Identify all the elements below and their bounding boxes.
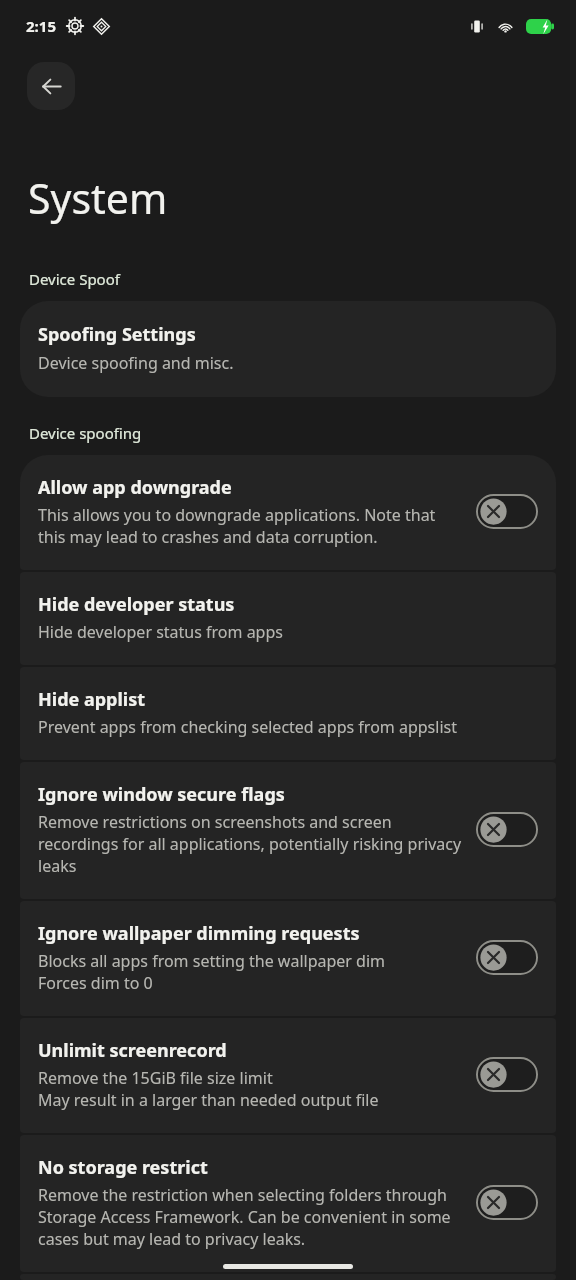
button[interactable]: Spoofing Settings <box>20 301 556 397</box>
staticText: Spoofing Settings <box>38 322 196 347</box>
button[interactable]: Toggle off <box>476 494 538 529</box>
button[interactable]: Toggle off <box>476 812 538 847</box>
staticText: This allows you to downgrade application… <box>38 504 466 548</box>
staticText: Allow app downgrade <box>38 475 232 500</box>
button[interactable]: Toggle off <box>476 1185 538 1220</box>
staticText: Prevent apps from checking selected apps… <box>38 716 457 738</box>
staticText: System <box>28 170 168 226</box>
button[interactable]: No storage restrict <box>20 1135 556 1272</box>
staticText: Unlimit screenrecord <box>38 1038 227 1063</box>
staticText: Device Spoof <box>29 269 120 289</box>
button[interactable]: Ignore window secure flags <box>20 762 556 899</box>
button[interactable]: Toggle off <box>476 940 538 975</box>
button[interactable]: Toggle off <box>476 1057 538 1092</box>
staticText: Remove the restriction when selecting fo… <box>38 1184 466 1250</box>
button[interactable]: Hide developer status <box>20 572 556 665</box>
button[interactable]: Hide applist <box>20 667 556 760</box>
staticText: Ignore window secure flags <box>38 782 285 807</box>
staticText: No storage restrict <box>38 1155 208 1180</box>
button[interactable]: Unlimit screenrecord <box>20 1018 556 1133</box>
staticText: Hide developer status <box>38 592 235 617</box>
staticText: Blocks all apps from setting the wallpap… <box>38 950 386 994</box>
button[interactable]: Ignore wallpaper dimming requests <box>20 901 556 1016</box>
staticText: Ignore wallpaper dimming requests <box>38 921 360 946</box>
button[interactable]: Allow app downgrade <box>20 455 556 570</box>
staticText: Device spoofing <box>29 423 142 443</box>
staticText: Remove restrictions on screenshots and s… <box>38 811 466 877</box>
staticText: Remove the 15GiB file size limit May res… <box>38 1067 379 1111</box>
staticText: Hide developer status from apps <box>38 621 283 643</box>
staticText: Hide applist <box>38 687 146 712</box>
button[interactable]: Back <box>27 62 75 110</box>
staticText: Device spoofing and misc. <box>38 352 234 374</box>
staticText: 2:15 <box>26 16 56 36</box>
